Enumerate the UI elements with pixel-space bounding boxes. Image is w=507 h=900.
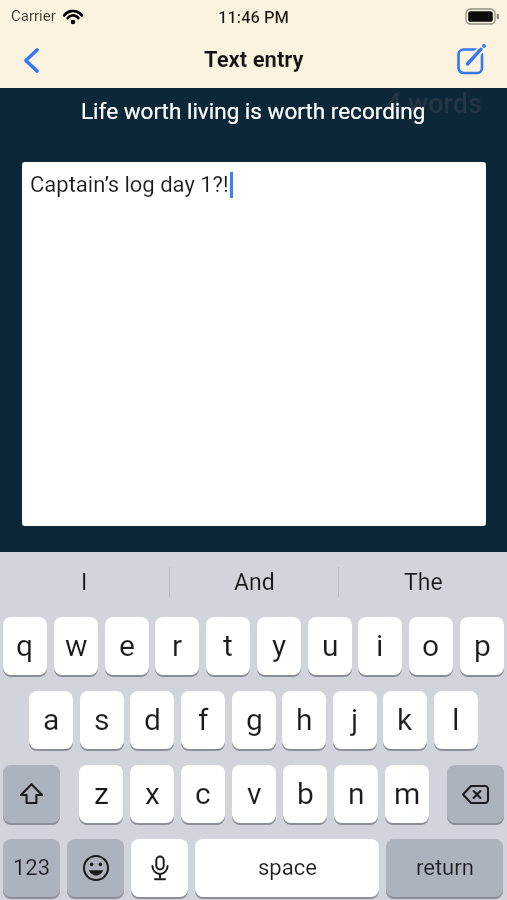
staticText: x [145,776,160,811]
staticText: w [65,628,88,663]
staticText: Life worth living is worth recording [81,98,426,124]
staticText: l [452,702,460,737]
staticText: z [94,776,109,811]
button[interactable]: Captain’s log day 1?! [22,162,486,526]
button[interactable]: z [79,765,123,823]
button[interactable]: j [333,691,377,749]
staticText: t [223,628,233,663]
staticText: n [348,776,365,811]
button[interactable]: i [358,617,402,675]
button[interactable]: x [130,765,174,823]
staticText: d [144,702,161,737]
staticText: b [297,776,314,811]
staticText: 4 words [386,88,482,120]
button[interactable]: u [308,617,352,675]
staticText: y [272,628,287,663]
staticText: o [422,628,440,663]
staticText: c [195,776,211,811]
button[interactable]: I [0,552,169,612]
button[interactable]: The [339,552,507,612]
staticText: j [351,702,359,737]
button[interactable]: y [257,617,301,675]
staticText: Text entry [204,47,304,73]
button[interactable]: And [170,552,338,612]
staticText: g [246,702,263,737]
staticText: v [247,776,262,811]
button[interactable]: m [385,765,429,823]
button[interactable] [456,44,488,76]
staticText: m [394,776,421,811]
staticText: s [94,702,110,737]
button[interactable]: w [54,617,98,675]
staticText: return [416,855,474,881]
button[interactable] [16,42,46,78]
button[interactable] [131,839,188,897]
button[interactable]: h [282,691,326,749]
button[interactable]: e [105,617,149,675]
button[interactable]: return [386,839,503,897]
staticText: h [296,702,313,737]
button[interactable]: o [409,617,453,675]
button[interactable] [447,765,504,823]
staticText: I [81,569,88,596]
button[interactable]: 123 [3,839,60,897]
staticText: space [258,855,317,881]
button[interactable]: t [206,617,250,675]
button[interactable]: c [181,765,225,823]
button[interactable]: n [334,765,378,823]
button[interactable]: d [130,691,174,749]
staticText: a [43,702,60,737]
button[interactable]: l [434,691,478,749]
staticText: f [198,702,209,737]
staticText: 123 [13,855,51,881]
staticText: The [404,569,443,596]
button[interactable]: a [29,691,73,749]
staticText: Carrier [11,7,56,25]
button[interactable]: p [460,617,504,675]
button[interactable]: r [155,617,199,675]
staticText: u [322,628,339,663]
button[interactable]: v [232,765,276,823]
staticText: p [474,628,491,663]
staticText: Captain’s log day 1?! [30,172,229,198]
staticText: r [172,628,183,663]
staticText: q [16,628,34,663]
button[interactable]: k [383,691,427,749]
staticText: e [119,628,135,663]
button[interactable]: space [195,839,379,897]
staticText: 11:46 PM [218,8,289,27]
staticText: i [376,628,384,663]
button[interactable] [3,765,60,823]
button[interactable] [67,839,124,897]
button[interactable]: b [283,765,327,823]
button[interactable]: s [80,691,124,749]
button[interactable]: q [3,617,47,675]
button[interactable]: g [232,691,276,749]
staticText: k [397,702,413,737]
staticText: And [234,569,275,596]
button[interactable]: f [181,691,225,749]
